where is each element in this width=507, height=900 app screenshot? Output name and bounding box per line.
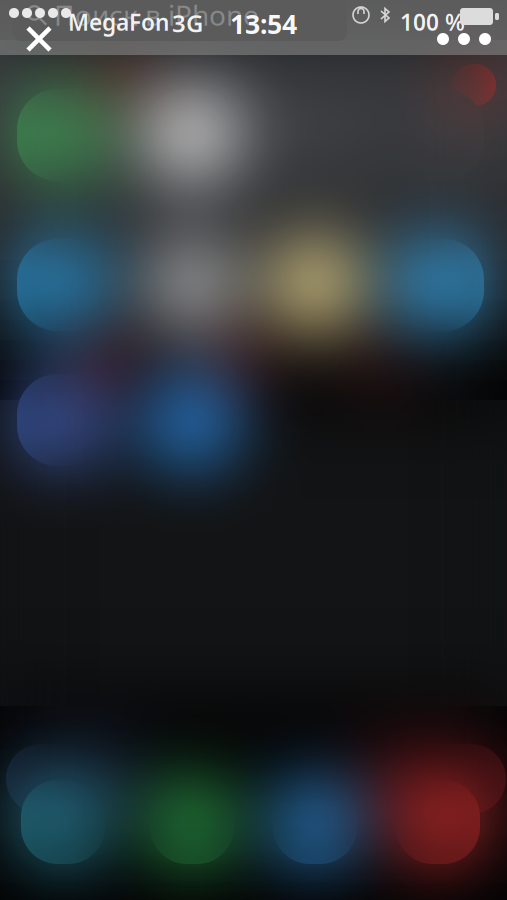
button[interactable]: Close search [17, 17, 61, 61]
staticText: 100 % [400, 7, 465, 37]
staticText: 3G [172, 7, 203, 39]
button[interactable]: Поиск в iPhone [12, 0, 347, 41]
staticText: MegaFon [68, 7, 169, 37]
staticText: Поиск в iPhone [54, 0, 259, 34]
staticText: 13:54 [230, 6, 297, 41]
